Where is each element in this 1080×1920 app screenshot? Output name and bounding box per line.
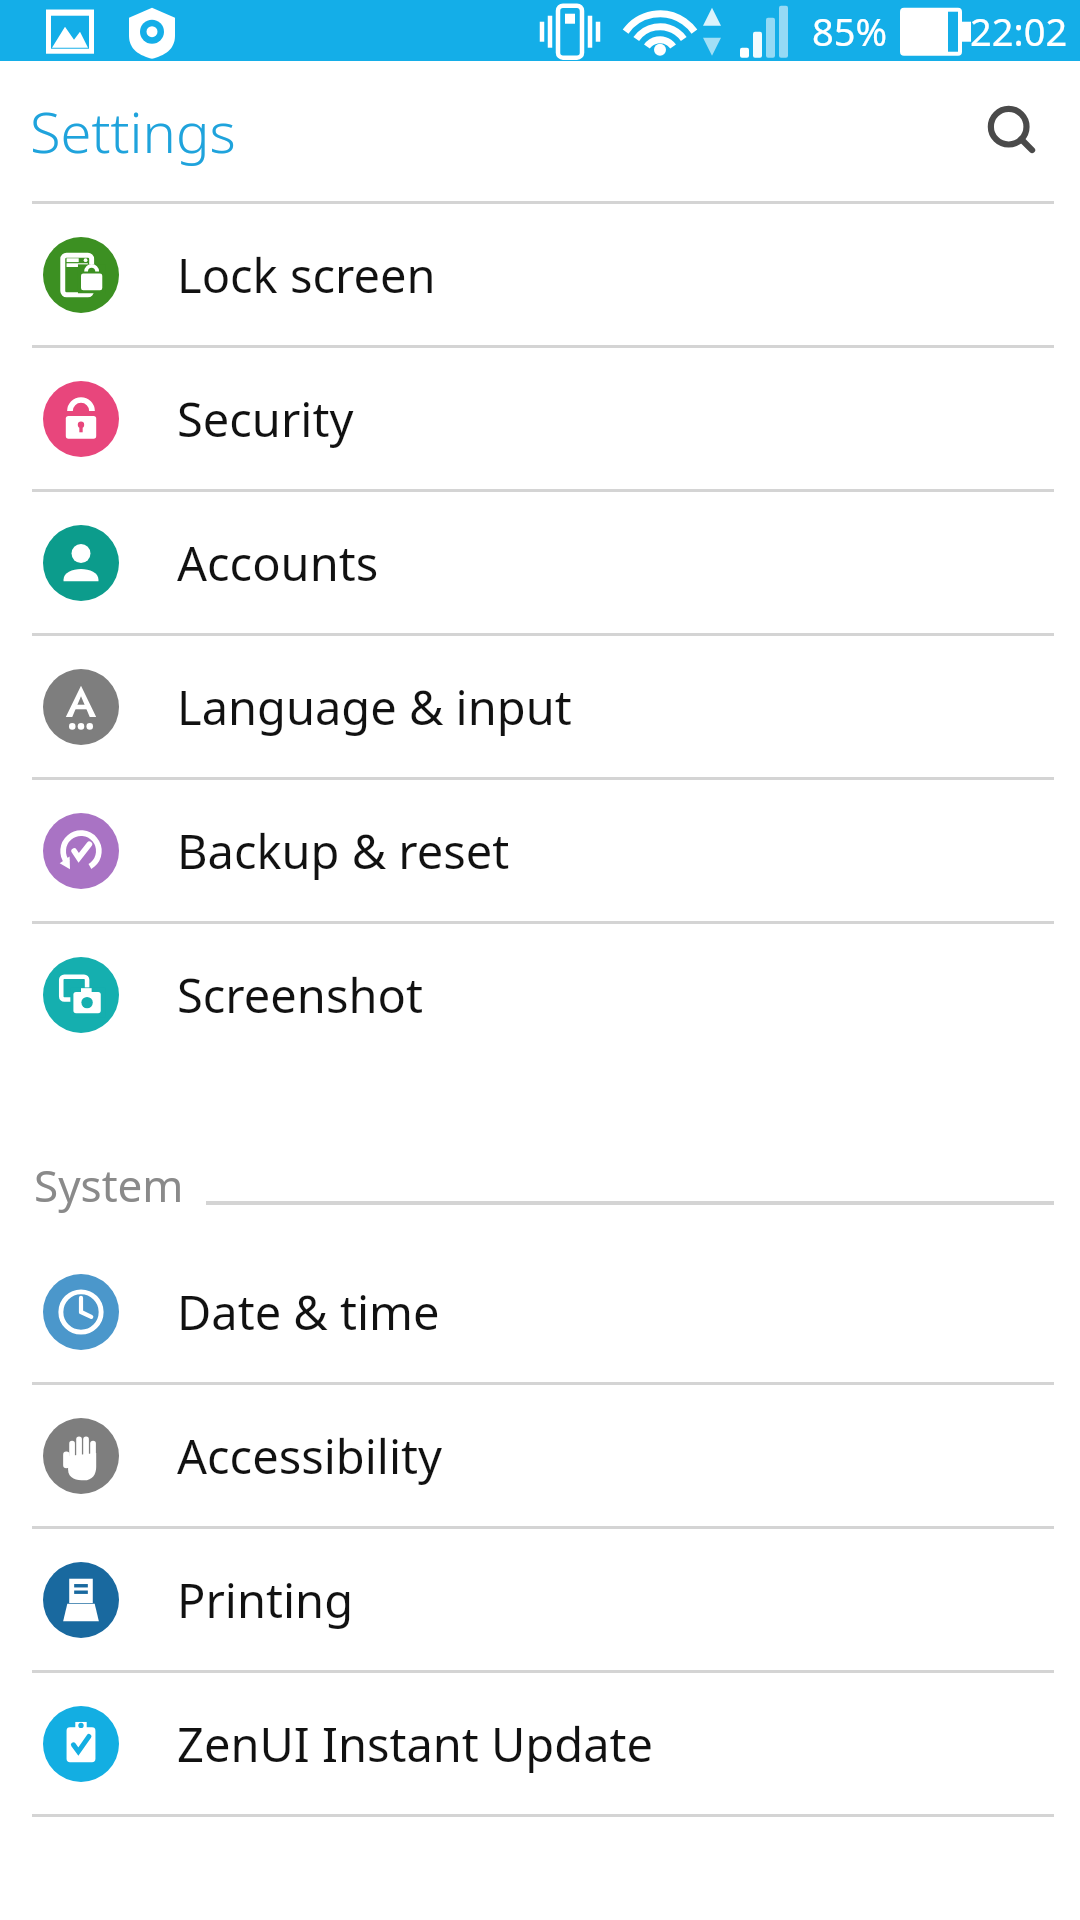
button[interactable]: Lock screen [0, 204, 1080, 345]
button[interactable]: Printing [0, 1529, 1080, 1670]
button[interactable]: Backup & reset [0, 780, 1080, 921]
button[interactable]: Accounts [0, 492, 1080, 633]
button[interactable]: Security [0, 348, 1080, 489]
staticText: Printing [177, 1568, 354, 1632]
button[interactable]: Date & time [0, 1241, 1080, 1382]
staticText: 22:02 [970, 5, 1068, 57]
button[interactable]: Accessibility [0, 1385, 1080, 1526]
staticText: Security [177, 387, 354, 451]
button[interactable]: ZenUI Instant Update [0, 1673, 1080, 1814]
staticText: Screenshot [177, 963, 423, 1027]
staticText: Accounts [177, 531, 379, 595]
button[interactable]: Search [968, 86, 1058, 176]
staticText: Date & time [177, 1280, 440, 1344]
staticText: Settings [30, 93, 236, 169]
staticText: System [34, 1155, 184, 1215]
staticText: Language & input [177, 675, 572, 739]
staticText: Lock screen [177, 243, 436, 307]
staticText: ZenUI Instant Update [177, 1712, 654, 1776]
button[interactable]: Language & input [0, 636, 1080, 777]
staticText: 85% [812, 5, 888, 57]
button[interactable]: Screenshot [0, 924, 1080, 1065]
staticText: Backup & reset [177, 819, 510, 883]
staticText: Accessibility [177, 1424, 443, 1488]
